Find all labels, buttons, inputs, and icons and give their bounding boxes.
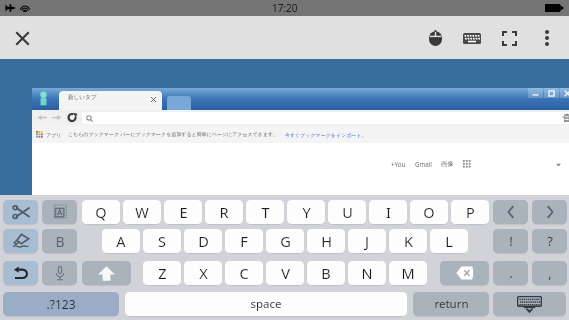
button[interactable]: ? xyxy=(532,229,567,253)
button[interactable]: L xyxy=(430,229,468,253)
staticText: I xyxy=(386,202,391,222)
button[interactable]: Draw xyxy=(3,229,38,253)
button[interactable]: Shift xyxy=(82,261,131,285)
button[interactable]: S xyxy=(143,229,181,253)
staticText: Q xyxy=(95,202,107,222)
button[interactable]: Keyboard xyxy=(453,19,491,57)
staticText: space xyxy=(250,296,282,312)
button[interactable]: Backspace xyxy=(440,261,489,285)
staticText: L xyxy=(445,231,453,251)
button[interactable]: More options xyxy=(528,19,566,57)
button[interactable]: .?123 xyxy=(3,292,119,316)
button[interactable]: Y xyxy=(287,200,325,224)
button[interactable]: Q xyxy=(82,200,120,224)
staticText: F xyxy=(240,231,248,251)
button[interactable]: R xyxy=(205,200,243,224)
staticText: X xyxy=(199,263,208,283)
staticText: O xyxy=(423,202,435,222)
button[interactable]: H xyxy=(307,229,345,253)
staticText: A xyxy=(116,231,126,251)
button[interactable]: C xyxy=(225,261,263,285)
staticText: return xyxy=(434,296,469,312)
staticText: アプリ xyxy=(46,132,62,138)
staticText: ! xyxy=(509,232,513,250)
staticText: . xyxy=(509,264,513,282)
button[interactable]: return xyxy=(413,292,489,316)
button[interactable]: A xyxy=(102,229,140,253)
staticText: M xyxy=(401,263,415,283)
staticText: , xyxy=(548,264,552,282)
button[interactable]: , xyxy=(532,261,567,285)
staticText: C xyxy=(239,263,249,283)
staticText: E xyxy=(179,202,188,222)
button[interactable]: Undo xyxy=(3,261,38,285)
button[interactable]: Mouse pointer xyxy=(416,19,454,57)
button[interactable]: . xyxy=(493,261,528,285)
button[interactable]: D xyxy=(184,229,222,253)
staticText: K xyxy=(404,231,413,251)
staticText: .?123 xyxy=(46,296,76,312)
button[interactable]: M xyxy=(389,261,427,285)
staticText: Z xyxy=(158,263,167,283)
button[interactable]: B xyxy=(307,261,345,285)
button[interactable]: T xyxy=(246,200,284,224)
button[interactable]: Cut xyxy=(3,200,38,224)
button[interactable]: B xyxy=(42,229,77,253)
button[interactable]: X xyxy=(184,261,222,285)
staticText: +You xyxy=(391,160,406,168)
button[interactable]: V xyxy=(266,261,304,285)
button[interactable]: space xyxy=(125,292,407,316)
button[interactable]: Next xyxy=(532,200,567,224)
staticText: S xyxy=(158,231,166,251)
button[interactable]: J xyxy=(348,229,386,253)
staticText: Gmail xyxy=(415,160,432,168)
button[interactable]: Close window xyxy=(560,88,569,98)
staticText: G xyxy=(280,231,291,251)
button[interactable]: Copy xyxy=(42,200,77,224)
button[interactable]: G xyxy=(266,229,304,253)
staticText: Y xyxy=(302,202,311,222)
button[interactable]: Close xyxy=(6,22,38,54)
button[interactable]: I xyxy=(369,200,407,224)
staticText: H xyxy=(321,231,332,251)
button[interactable]: W xyxy=(123,200,161,224)
staticText: こちらのブックマーク バーにブックマークを追加すると簡単にページにアクセスできま… xyxy=(68,131,279,138)
button[interactable]: Voice input xyxy=(42,261,77,285)
button[interactable] xyxy=(82,112,569,124)
staticText: B xyxy=(55,232,65,251)
button[interactable]: Hide keyboard xyxy=(493,292,566,316)
button[interactable]: E xyxy=(164,200,202,224)
staticText: 新しいタブ xyxy=(68,94,97,101)
staticText: N xyxy=(361,263,373,283)
button[interactable]: N xyxy=(348,261,386,285)
button[interactable]: Previous xyxy=(493,200,528,224)
staticText: R xyxy=(219,202,229,222)
staticText: ? xyxy=(547,232,553,250)
staticText: 画像 xyxy=(441,160,454,168)
staticText: T xyxy=(261,202,270,222)
button[interactable]: 新しいタブ xyxy=(59,91,162,110)
button[interactable]: P xyxy=(451,200,489,224)
staticText: J xyxy=(365,231,369,251)
button[interactable]: K xyxy=(389,229,427,253)
staticText: P xyxy=(466,202,475,222)
staticText: V xyxy=(281,263,290,283)
button[interactable]: O xyxy=(410,200,448,224)
staticText: U xyxy=(342,202,353,222)
button[interactable]: Maximize xyxy=(544,88,559,98)
button[interactable]: Z xyxy=(143,261,181,285)
staticText: W xyxy=(135,202,149,222)
staticText: B xyxy=(321,263,331,283)
button[interactable]: Full screen xyxy=(490,19,528,57)
button[interactable]: New tab xyxy=(167,96,191,110)
button[interactable]: Minimize xyxy=(528,88,543,98)
staticText: D xyxy=(198,231,209,251)
button[interactable]: U xyxy=(328,200,366,224)
button[interactable]: ! xyxy=(493,229,528,253)
staticText: 今すぐブックマークをインポート。 xyxy=(285,132,367,138)
staticText: 17:20 xyxy=(272,1,298,15)
button[interactable]: F xyxy=(225,229,263,253)
